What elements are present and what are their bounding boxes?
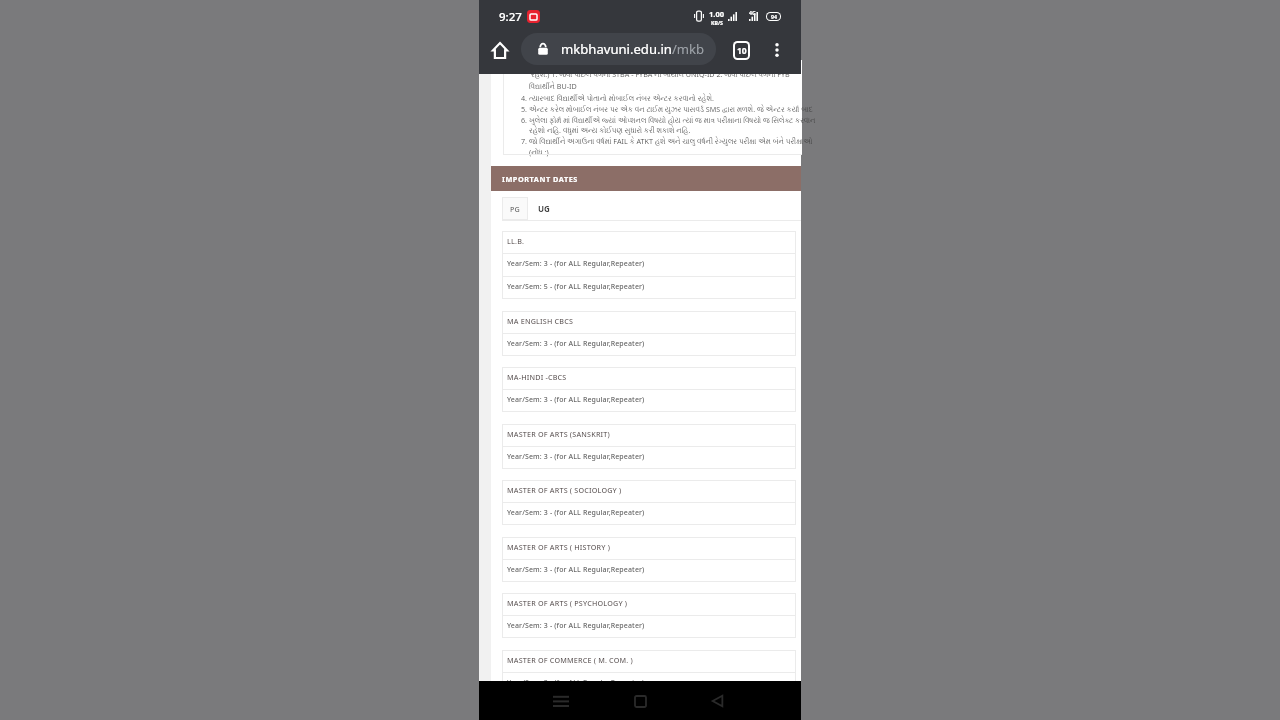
- button[interactable]: MASTER OF ARTS ( SOCIOLOGY ): [502, 480, 796, 502]
- staticText: 94: [771, 13, 777, 20]
- staticText: /mkb: [672, 40, 705, 58]
- staticText: રહેશે.) 1. જેવા પાછલ વર્ગના STBA - FYBA …: [531, 69, 790, 79]
- staticText: Year/Sem: 3 - (for ALL Regular,Repeater): [507, 508, 645, 518]
- staticText: MA-HINDI -CBCS: [507, 372, 567, 382]
- staticText: 5. એન્ટર કરેલ મોબાઈલ નંબર પર એક વન ટાઈમ …: [521, 104, 820, 114]
- staticText: Year/Sem: 3 - (for ALL Regular,Repeater): [507, 395, 645, 405]
- staticText: 1.00: [709, 9, 724, 19]
- button[interactable]: MASTER OF ARTS ( HISTORY ): [502, 537, 796, 559]
- button[interactable]: MA ENGLISH CBCS: [502, 311, 796, 333]
- button[interactable]: Back: [703, 687, 731, 715]
- staticText: MASTER OF COMMERCE ( M. COM. ): [507, 655, 633, 665]
- staticText: 10: [737, 45, 747, 57]
- staticText: PG: [510, 204, 520, 214]
- button[interactable]: Year/Sem: 3 - (for ALL Regular,Repeater): [502, 503, 796, 525]
- staticText: IMPORTANT DATES: [502, 174, 578, 184]
- staticText: MA ENGLISH CBCS: [507, 316, 574, 326]
- button[interactable]: Year/Sem: 3 - (for ALL Regular,Repeater): [502, 390, 796, 412]
- staticText: UG: [538, 203, 550, 214]
- staticText: Year/Sem: 3 - (for ALL Regular,Repeater): [507, 678, 645, 688]
- staticText: Year/Sem: 3 - (for ALL Regular,Repeater): [507, 565, 645, 575]
- staticText: mkbhavuni.edu.in: [561, 40, 672, 58]
- staticText: રહેશો નહિ. વધુમાં અન્ય કોઈપણ સુધારો કરી …: [529, 125, 691, 135]
- staticText: વિદ્યાર્થીને BU-ID: [529, 81, 577, 91]
- staticText: MASTER OF ARTS ( HISTORY ): [507, 542, 611, 552]
- staticText: 6. ખુલેલા ફોર્મ માં વિદ્યાર્થીએ જ્યાં ઓપ…: [521, 115, 816, 125]
- staticText: Year/Sem: 3 - (for ALL Regular,Repeater): [507, 621, 645, 631]
- staticText: MASTER OF ARTS ( SOCIOLOGY ): [507, 485, 622, 495]
- button[interactable]: LL.B.: [502, 231, 796, 253]
- button[interactable]: Home: [486, 36, 514, 64]
- button[interactable]: Home: [626, 687, 654, 715]
- button[interactable]: Year/Sem: 3 - (for ALL Regular,Repeater): [502, 673, 796, 695]
- button[interactable]: Year/Sem: 3 - (for ALL Regular,Repeater): [502, 447, 796, 469]
- button[interactable]: Year/Sem: 5 - (for ALL Regular,Repeater): [502, 277, 796, 299]
- staticText: Year/Sem: 5 - (for ALL Regular,Repeater): [507, 282, 645, 292]
- button[interactable]: UG: [532, 197, 556, 220]
- button[interactable]: mkbhavuni.edu.in: [521, 33, 716, 65]
- button[interactable]: Year/Sem: 3 - (for ALL Regular,Repeater): [502, 560, 796, 582]
- button[interactable]: MASTER OF ARTS ( PSYCHOLOGY ): [502, 593, 796, 615]
- staticText: KB/S: [711, 19, 723, 26]
- staticText: 4. ત્યારબાદ વિદ્યાર્થીએ પોતાનો મોબાઈલ નં…: [521, 93, 714, 103]
- button[interactable]: More options: [763, 36, 791, 64]
- button[interactable]: PG: [502, 197, 528, 220]
- staticText: MASTER OF ARTS ( PSYCHOLOGY ): [507, 598, 628, 608]
- staticText: 7. જો વિદ્યાર્થીને અગાઉના વર્ષમાં FAIL ક…: [521, 136, 813, 146]
- button[interactable]: Year/Sem: 3 - (for ALL Regular,Repeater): [502, 334, 796, 356]
- button[interactable]: MA-HINDI -CBCS: [502, 367, 796, 389]
- staticText: Year/Sem: 3 - (for ALL Regular,Repeater): [507, 452, 645, 462]
- button[interactable]: MASTER OF ARTS (SANSKRIT): [502, 424, 796, 446]
- staticText: (નોંધ :): [529, 147, 549, 157]
- staticText: 4G: [749, 9, 756, 16]
- button[interactable]: Year/Sem: 3 - (for ALL Regular,Repeater): [502, 254, 796, 276]
- staticText: LL.B.: [507, 236, 525, 246]
- staticText: 9:27: [499, 9, 522, 25]
- button[interactable]: MASTER OF COMMERCE ( M. COM. ): [502, 650, 796, 672]
- staticText: MASTER OF ARTS (SANSKRIT): [507, 429, 610, 439]
- staticText: Year/Sem: 3 - (for ALL Regular,Repeater): [507, 259, 645, 269]
- button[interactable]: Tabs: [727, 36, 755, 64]
- button[interactable]: Year/Sem: 3 - (for ALL Regular,Repeater): [502, 616, 796, 638]
- button[interactable]: Recent apps: [547, 687, 575, 715]
- staticText: Year/Sem: 3 - (for ALL Regular,Repeater): [507, 339, 645, 349]
